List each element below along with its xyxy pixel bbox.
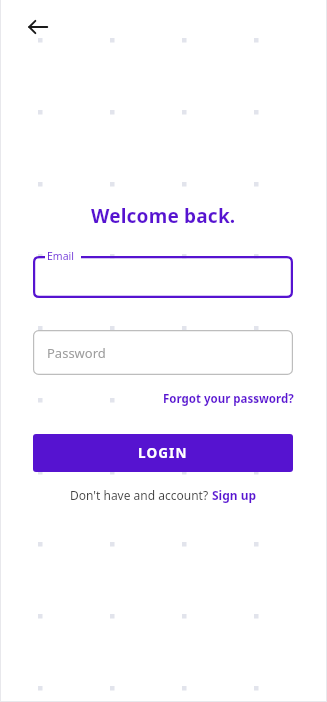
button[interactable]: Forgot your password? — [163, 391, 294, 407]
button[interactable]: LOGIN — [33, 434, 293, 472]
button[interactable]: Password — [33, 330, 293, 375]
button[interactable]: Back — [18, 7, 58, 47]
staticText: Don't have and account? — [70, 487, 212, 503]
staticText: Password — [47, 344, 106, 362]
staticText: Welcome back. — [91, 203, 236, 229]
staticText: LOGIN — [138, 444, 188, 462]
button[interactable]: Email — [33, 256, 293, 298]
staticText: Email — [47, 249, 74, 263]
button[interactable]: Sign up — [212, 487, 257, 503]
staticText: Forgot your password? — [163, 391, 294, 407]
staticText: Sign up — [212, 487, 257, 503]
